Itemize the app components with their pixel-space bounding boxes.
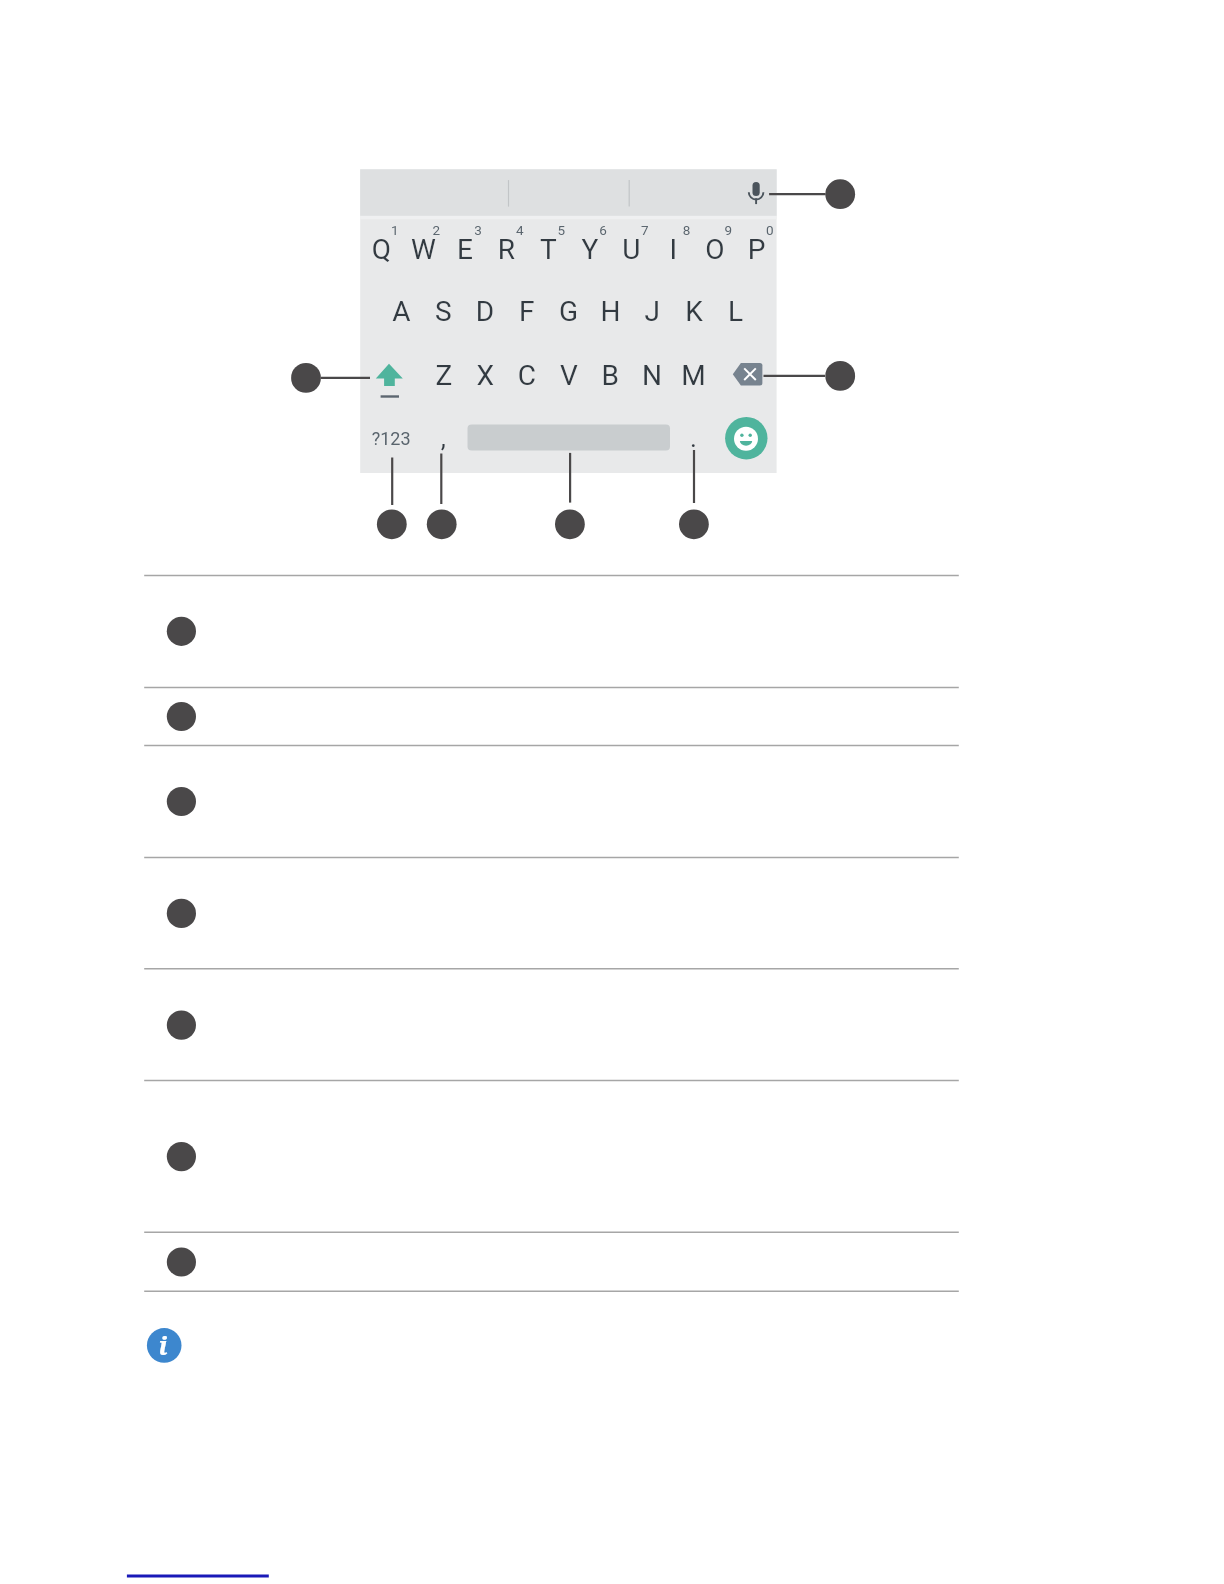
button[interactable]: Period: [670, 406, 718, 474]
button[interactable]: R: [486, 219, 528, 276]
button[interactable]: Note: [145, 1327, 183, 1365]
button[interactable]: D: [465, 284, 507, 342]
button[interactable]: B: [590, 348, 632, 406]
button[interactable]: Space: [468, 406, 671, 474]
button[interactable]: Voice input: [722, 169, 777, 215]
button[interactable]: Comma: [422, 406, 467, 474]
button[interactable]: Link: [126, 1558, 270, 1578]
button[interactable]: X: [465, 348, 507, 406]
button[interactable]: F: [506, 284, 548, 342]
button[interactable]: V: [548, 348, 590, 406]
button[interactable]: N: [631, 348, 673, 406]
button[interactable]: C: [506, 348, 548, 406]
button[interactable]: Emoji: [724, 413, 769, 463]
button[interactable]: M: [673, 348, 715, 406]
button[interactable]: J: [632, 284, 674, 342]
button[interactable]: Z: [423, 348, 465, 406]
button[interactable]: H: [590, 284, 632, 342]
button[interactable]: W: [403, 219, 445, 276]
button[interactable]: T: [528, 219, 570, 276]
button[interactable]: I: [653, 219, 695, 276]
button[interactable]: G: [548, 284, 590, 342]
button[interactable]: Y: [569, 219, 611, 276]
button[interactable]: Shift: [360, 348, 420, 406]
button[interactable]: A: [381, 284, 423, 342]
button[interactable]: K: [673, 284, 715, 342]
button[interactable]: O: [694, 219, 736, 276]
button[interactable]: Backspace: [722, 348, 777, 406]
button[interactable]: L: [715, 284, 757, 342]
button[interactable]: Q: [361, 219, 403, 276]
button[interactable]: P: [736, 219, 778, 276]
button[interactable]: U: [611, 219, 653, 276]
button[interactable]: E: [444, 219, 486, 276]
button[interactable]: Symbols ?123: [360, 406, 422, 474]
button[interactable]: S: [423, 284, 465, 342]
